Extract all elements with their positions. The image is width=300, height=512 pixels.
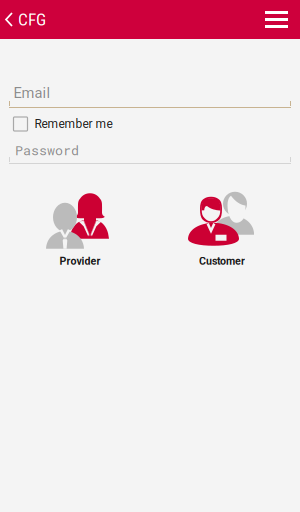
button[interactable]: Provider xyxy=(46,191,114,267)
button[interactable]: Menu xyxy=(265,0,300,39)
button[interactable]: CFG xyxy=(0,0,56,39)
button[interactable]: Customer xyxy=(188,191,256,267)
staticText: Password xyxy=(15,141,79,159)
staticText: Remember me xyxy=(34,117,112,131)
staticText: Provider xyxy=(59,255,100,267)
staticText: Customer xyxy=(199,255,245,267)
staticText: CFG xyxy=(18,9,46,30)
staticText: Email xyxy=(13,84,50,102)
button[interactable]: Remember me xyxy=(13,117,112,131)
